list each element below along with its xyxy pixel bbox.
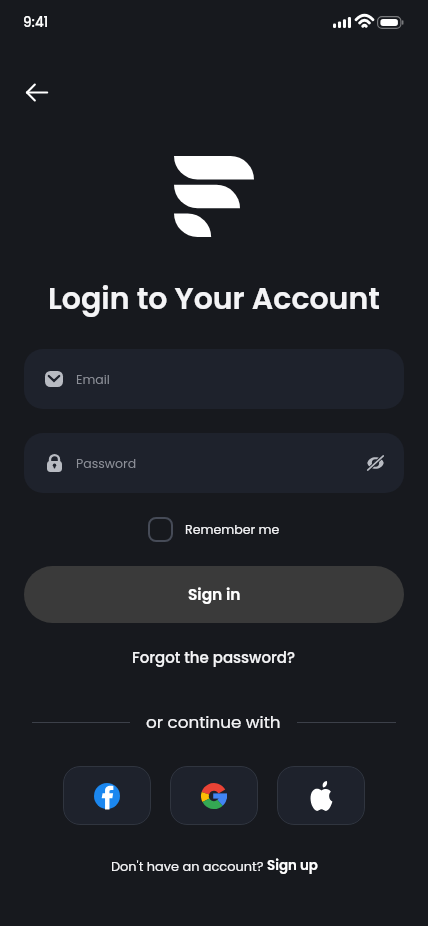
staticText: or continue with bbox=[146, 710, 281, 734]
button[interactable]: Back bbox=[13, 68, 61, 116]
staticText: Sign in bbox=[188, 584, 241, 606]
staticText: Email bbox=[76, 371, 110, 388]
button[interactable]: Continue with Google bbox=[170, 766, 258, 825]
button[interactable]: Forgot the password? bbox=[128, 645, 300, 670]
button[interactable]: Continue with Facebook bbox=[63, 766, 151, 825]
button[interactable]: Show password bbox=[360, 448, 390, 478]
button[interactable]: Email bbox=[24, 349, 404, 409]
staticText: Don't have an account? bbox=[111, 857, 267, 875]
button[interactable]: Password bbox=[24, 433, 404, 493]
button[interactable]: Remember me bbox=[144, 513, 284, 546]
staticText: Remember me bbox=[185, 521, 280, 539]
button[interactable]: Sign in bbox=[24, 566, 404, 623]
staticText: 9:41 bbox=[23, 13, 49, 32]
button[interactable]: Continue with Apple bbox=[277, 766, 365, 825]
button[interactable]: Sign up bbox=[267, 856, 318, 875]
staticText: Password bbox=[76, 455, 137, 472]
staticText: Login to Your Account bbox=[48, 278, 380, 320]
